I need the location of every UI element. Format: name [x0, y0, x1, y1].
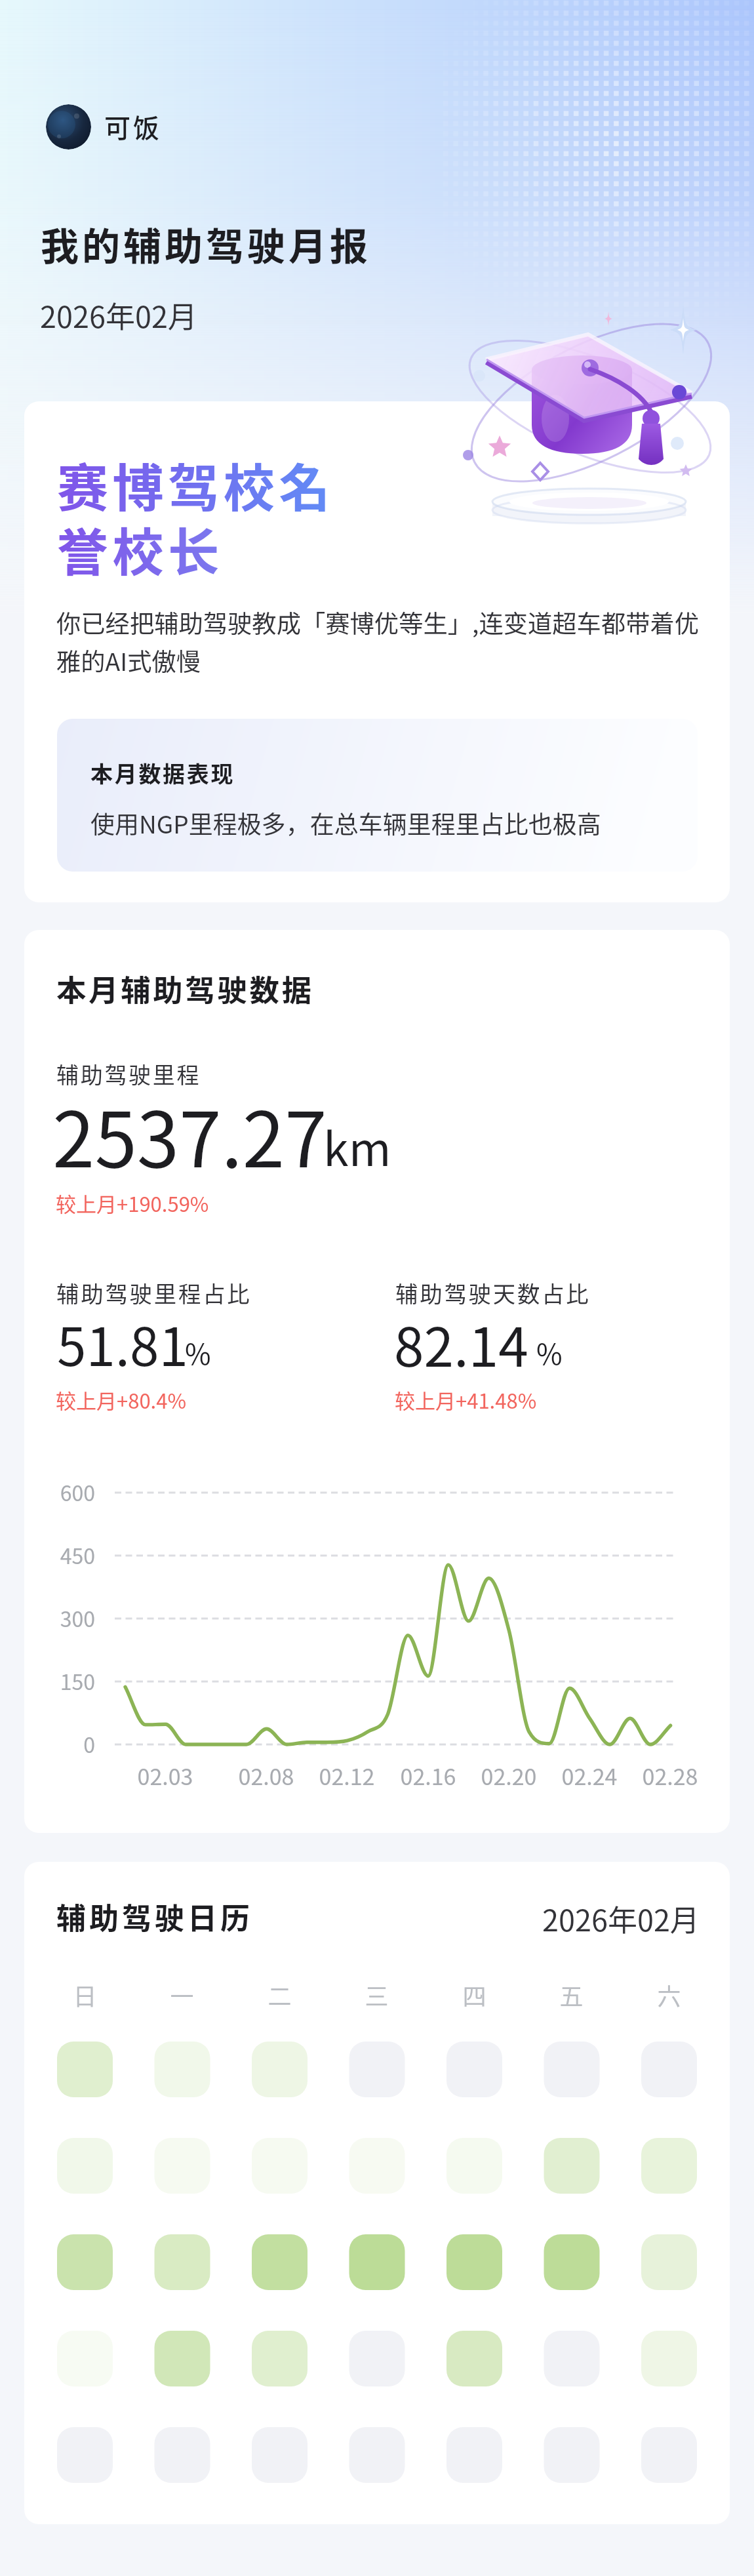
staticText: 可饭 [104, 108, 162, 146]
staticText: 日 [57, 1978, 113, 2018]
staticText: 誉校长 [57, 512, 224, 586]
staticText: 我的辅助驾驶月报 [41, 216, 372, 272]
staticText: 02.20 [463, 1760, 555, 1798]
staticText: 四 [446, 1978, 502, 2018]
staticText: 本月辅助驾驶数据 [56, 967, 314, 1010]
staticText: 450 [16, 1540, 95, 1575]
staticText: 雅的AI式傲慢 [56, 643, 201, 678]
staticText: 51.81 [57, 1305, 188, 1381]
staticText: 五 [544, 1978, 599, 2018]
staticText: 较上月+41.48% [395, 1385, 537, 1415]
staticText: 02.24 [544, 1760, 635, 1798]
staticText: 本月数据表现 [90, 757, 235, 789]
staticText: 辅助驾驶天数占比 [395, 1276, 591, 1309]
staticText: 一 [154, 1978, 210, 2018]
staticText: 300 [16, 1603, 95, 1638]
button[interactable] [24, 401, 730, 902]
button[interactable]: Profile avatar [46, 104, 91, 150]
staticText: 02.28 [624, 1760, 716, 1798]
staticText: 较上月+80.4% [56, 1385, 186, 1415]
staticText: 较上月+190.59% [56, 1188, 209, 1218]
staticText: 82.14 [394, 1304, 528, 1382]
staticText: 你已经把辅助驾驶教成「赛博优等生」,连变道超车都带着优 [56, 605, 700, 640]
button[interactable] [24, 930, 730, 1833]
staticText: 02.03 [119, 1760, 211, 1798]
staticText: % [536, 1332, 563, 1373]
staticText: 使用NGP里程极多，在总车辆里程里占比也极高 [90, 805, 601, 841]
staticText: 赛博驾校名 [57, 448, 335, 522]
staticText: 2026年02月 [40, 294, 197, 336]
staticText: 六 [641, 1978, 697, 2018]
staticText: 三 [349, 1978, 405, 2018]
staticText: km [323, 1113, 391, 1179]
staticText: % [185, 1332, 211, 1373]
staticText: 辅助驾驶日历 [56, 1895, 254, 1938]
staticText: 二 [252, 1978, 308, 2018]
button[interactable] [24, 1862, 730, 2524]
staticText: 0 [16, 1729, 95, 1764]
staticText: 150 [16, 1666, 95, 1701]
staticText: 辅助驾驶里程占比 [56, 1276, 252, 1309]
staticText: 辅助驾驶里程 [56, 1058, 201, 1090]
staticText: 2026年02月 [542, 1897, 700, 1940]
staticText: 02.08 [220, 1760, 312, 1798]
staticText: 02.12 [301, 1760, 393, 1798]
staticText: 02.16 [382, 1760, 474, 1798]
staticText: 600 [16, 1477, 95, 1512]
staticText: 2537.27 [52, 1079, 327, 1189]
